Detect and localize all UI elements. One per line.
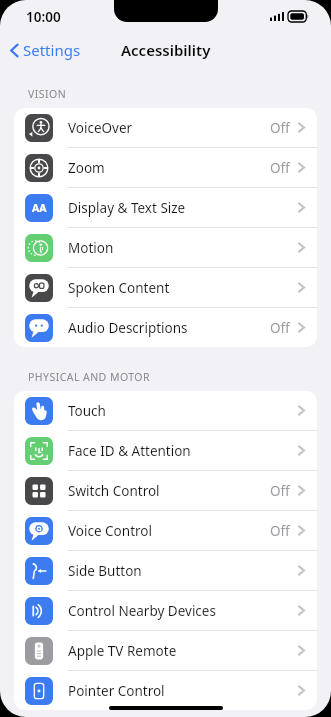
staticText: Audio Descriptions xyxy=(68,319,188,337)
button[interactable]: Zoom xyxy=(14,148,317,187)
button[interactable]: Pointer Control xyxy=(14,671,317,710)
button[interactable]: Control Nearby Devices xyxy=(14,591,317,630)
staticText: AA xyxy=(32,201,47,215)
staticText: VoiceOver xyxy=(68,119,133,137)
button[interactable]: Voice Control xyxy=(14,511,317,550)
button[interactable]: Switch Control xyxy=(14,471,317,510)
button[interactable]: Motion xyxy=(14,228,317,267)
staticText: Off xyxy=(270,319,290,337)
staticText: VISION xyxy=(28,87,67,101)
staticText: Accessibility xyxy=(121,40,211,60)
staticText: Off xyxy=(270,119,290,137)
button[interactable]: Apple TV Remote xyxy=(14,631,317,670)
button[interactable]: Touch xyxy=(14,391,317,430)
staticText: Side Button xyxy=(68,562,142,580)
staticText: Spoken Content xyxy=(68,279,170,297)
staticText: Off xyxy=(270,482,290,500)
staticText: Voice Control xyxy=(68,522,152,540)
button[interactable]: Side Button xyxy=(14,551,317,590)
staticText: PHYSICAL AND MOTOR xyxy=(28,370,150,384)
staticText: Apple TV Remote xyxy=(68,642,177,660)
staticText: Zoom xyxy=(68,159,105,177)
staticText: Face ID & Attention xyxy=(68,442,191,460)
button[interactable]: VoiceOver xyxy=(14,108,317,147)
staticText: Motion xyxy=(68,239,114,257)
staticText: Settings xyxy=(23,40,81,60)
staticText: Off xyxy=(270,159,290,177)
staticText: Touch xyxy=(68,402,106,420)
button[interactable]: AA xyxy=(14,188,317,227)
staticText: Display & Text Size xyxy=(68,199,186,217)
staticText: Switch Control xyxy=(68,482,160,500)
staticText: Off xyxy=(270,522,290,540)
staticText: Pointer Control xyxy=(68,682,165,700)
button[interactable]: Settings xyxy=(0,35,89,65)
staticText: 10:00 xyxy=(26,8,61,26)
staticText: Control Nearby Devices xyxy=(68,602,216,620)
button[interactable]: Face ID & Attention xyxy=(14,431,317,470)
button[interactable]: Audio Descriptions xyxy=(14,308,317,347)
button[interactable]: Spoken Content xyxy=(14,268,317,307)
